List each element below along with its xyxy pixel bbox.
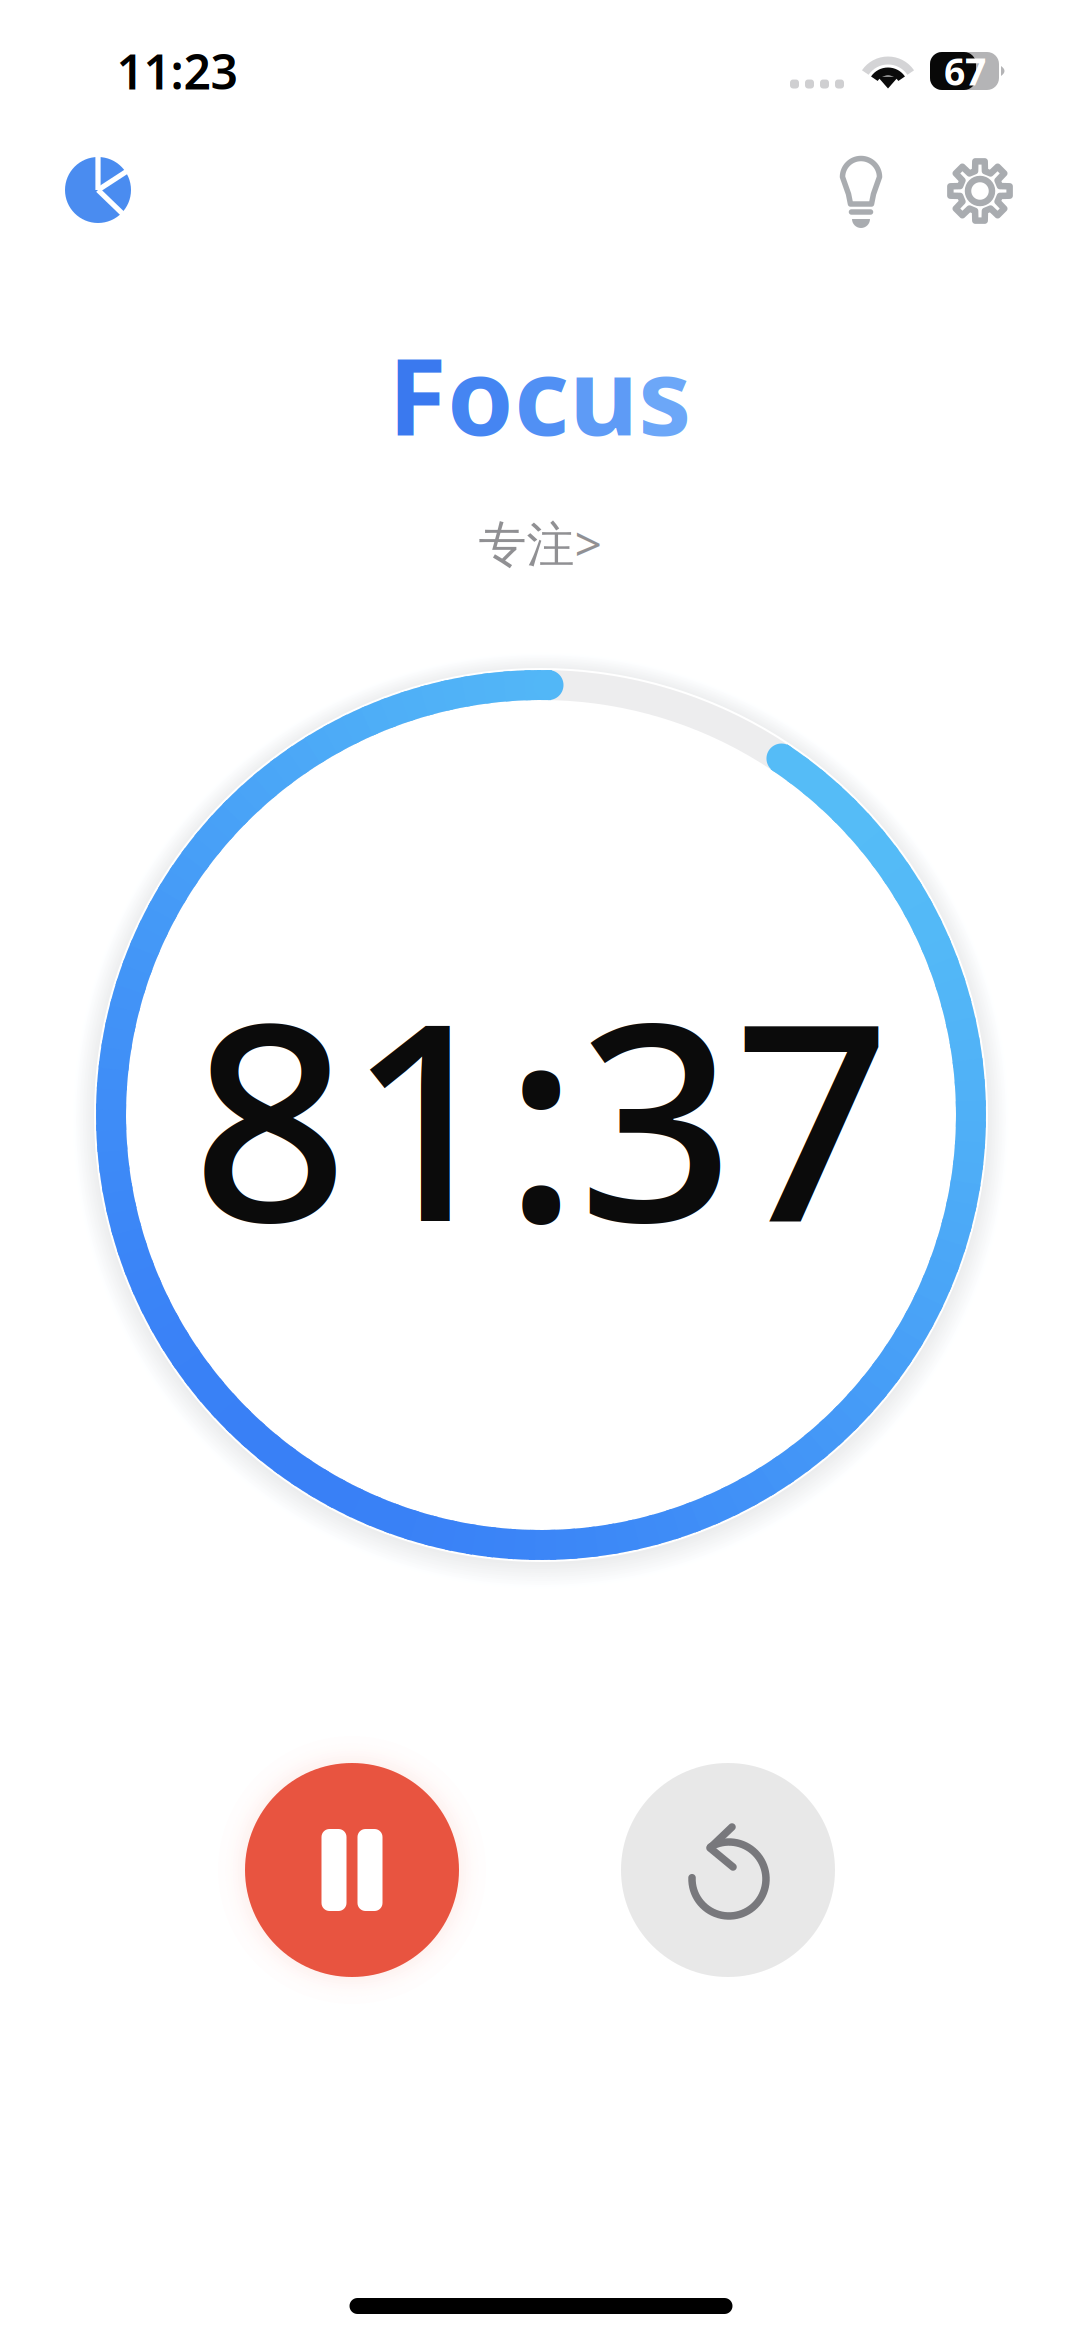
staticText: F <box>388 323 447 465</box>
button[interactable]: Pause <box>212 1730 492 2010</box>
button[interactable]: Tips <box>814 134 908 248</box>
staticText: o <box>447 323 514 465</box>
button[interactable]: Settings <box>934 145 1025 236</box>
staticText: u <box>569 323 638 465</box>
button[interactable]: Statistics <box>43 135 153 245</box>
staticText: c <box>514 323 569 465</box>
staticText: 67 <box>944 46 986 96</box>
button[interactable]: 专注> <box>478 511 601 575</box>
button[interactable]: Restart <box>621 1763 835 1977</box>
staticText: s <box>638 323 692 465</box>
staticText: 11:23 <box>116 39 237 103</box>
staticText: 81:37 <box>192 933 890 1296</box>
staticText: 专注> <box>478 511 601 575</box>
